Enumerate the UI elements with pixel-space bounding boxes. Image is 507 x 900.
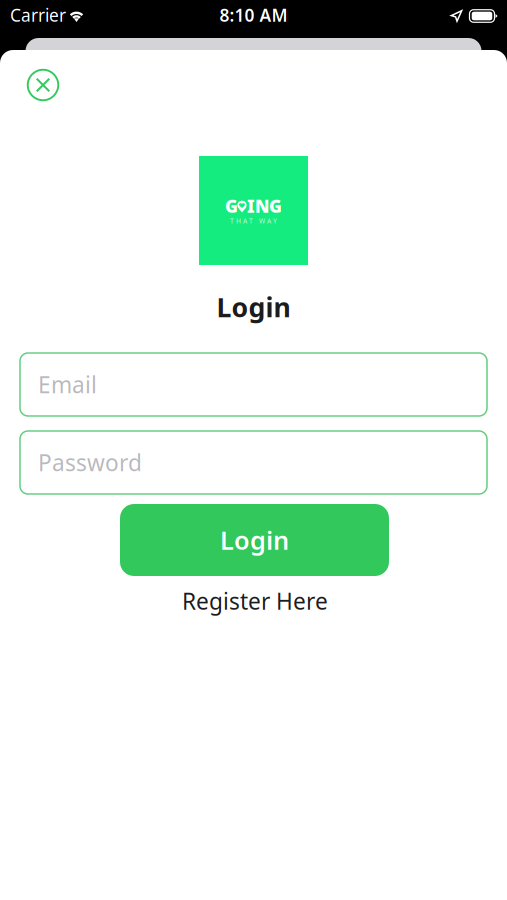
- button[interactable]: Login: [120, 504, 389, 576]
- button[interactable]: Email: [20, 353, 487, 416]
- staticText: G: [225, 195, 238, 218]
- button[interactable]: Register Here: [155, 586, 355, 616]
- button[interactable]: Close: [23, 65, 63, 105]
- button[interactable]: Password: [20, 431, 487, 494]
- staticText: T H A T W A Y: [230, 217, 277, 225]
- staticText: Password: [38, 447, 142, 477]
- staticText: Register Here: [182, 586, 328, 616]
- staticText: Email: [38, 369, 97, 399]
- staticText: Carrier: [10, 3, 66, 26]
- staticText: 8:10 AM: [219, 3, 287, 26]
- staticText: Login: [220, 523, 289, 557]
- staticText: Login: [216, 289, 290, 325]
- staticText: ING: [247, 195, 282, 218]
